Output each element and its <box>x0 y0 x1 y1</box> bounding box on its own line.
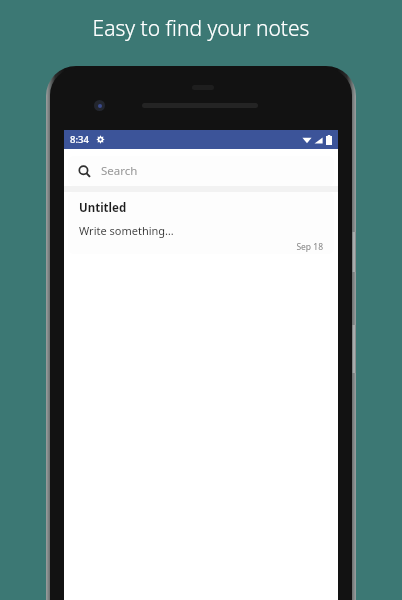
staticText: Sep 18 <box>79 241 323 253</box>
staticText: Easy to find your notes <box>0 14 402 43</box>
button[interactable]: Search <box>68 156 334 186</box>
staticText: 8:34 <box>70 133 89 146</box>
staticText: Untitled <box>79 200 127 216</box>
staticText: Search <box>101 163 138 179</box>
staticText: Write something… <box>79 223 174 238</box>
button[interactable]: Untitled <box>68 192 334 254</box>
